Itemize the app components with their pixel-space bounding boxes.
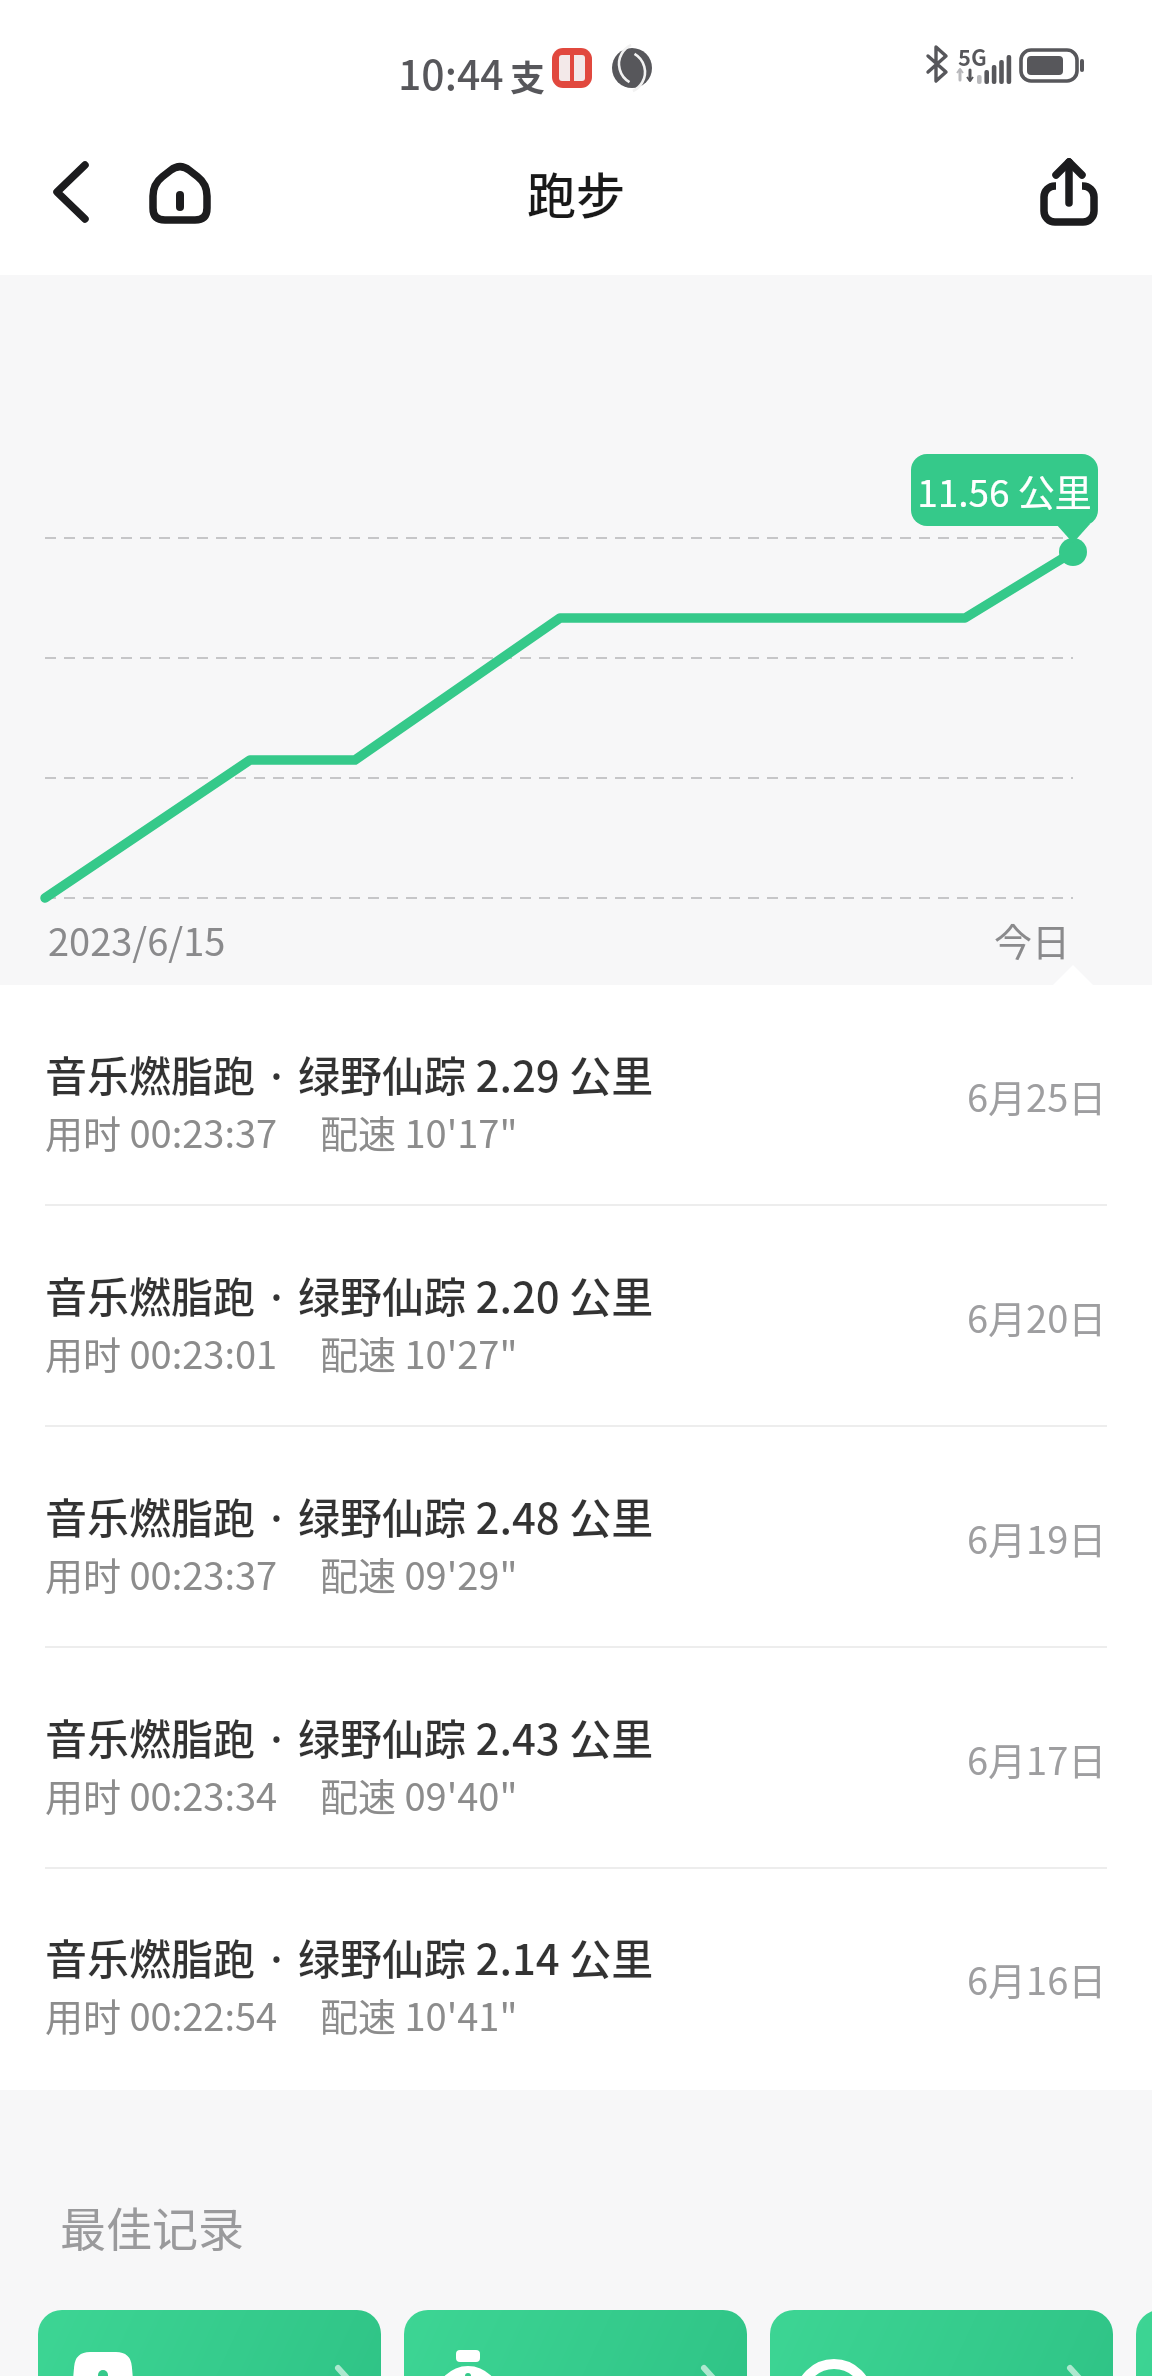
button[interactable] — [36, 162, 106, 232]
staticText: 用时 00:23:01 — [45, 1325, 278, 1380]
staticText: 6月17日 — [967, 1731, 1107, 1786]
button[interactable]: 音乐燃脂跑 · 绿野仙踪 2.29 公里 — [0, 985, 1152, 1206]
staticText: 跑步 — [527, 157, 626, 228]
staticText: 配速 10'27" — [320, 1325, 518, 1380]
staticText: 配速 10'17" — [320, 1104, 518, 1159]
staticText: 配速 09'40" — [320, 1767, 518, 1822]
button[interactable]: 音乐燃脂跑 · 绿野仙踪 2.43 公里 — [0, 1648, 1152, 1869]
button[interactable]: 音乐燃脂跑 · 绿野仙踪 2.20 公里 — [0, 1206, 1152, 1427]
staticText: 11.56 公里 — [911, 464, 1098, 518]
staticText: 用时 00:23:37 — [45, 1104, 278, 1159]
staticText: 音乐燃脂跑 · 绿野仙踪 2.20 公里 — [45, 1264, 654, 1325]
button[interactable]: 音乐燃脂跑 · 绿野仙踪 2.48 公里 — [0, 1427, 1152, 1648]
staticText: 6月19日 — [967, 1510, 1107, 1565]
staticText: 2023/6/15 — [48, 912, 226, 967]
staticText: 用时 00:23:37 — [45, 1546, 278, 1601]
staticText: 配速 09'29" — [320, 1546, 518, 1601]
staticText: 用时 00:23:34 — [45, 1767, 278, 1822]
staticText: 6月16日 — [967, 1951, 1107, 2006]
button[interactable] — [770, 2310, 1113, 2376]
staticText: 6月20日 — [967, 1289, 1107, 1344]
staticText: 5G — [958, 40, 987, 72]
staticText: 配速 10'41" — [320, 1987, 518, 2042]
button[interactable] — [1030, 148, 1110, 228]
staticText: 今日 — [994, 912, 1071, 967]
button[interactable]: 音乐燃脂跑 · 绿野仙踪 2.14 公里 — [0, 1869, 1152, 2088]
staticText: 音乐燃脂跑 · 绿野仙踪 2.48 公里 — [45, 1485, 654, 1546]
staticText: 音乐燃脂跑 · 绿野仙踪 2.43 公里 — [45, 1706, 654, 1767]
staticText: 用时 00:22:54 — [45, 1987, 278, 2042]
button[interactable] — [404, 2310, 747, 2376]
staticText: 音乐燃脂跑 · 绿野仙踪 2.29 公里 — [45, 1043, 654, 1104]
staticText: 音乐燃脂跑 · 绿野仙踪 2.14 公里 — [45, 1926, 654, 1987]
button[interactable] — [38, 2310, 381, 2376]
staticText: 最佳记录 — [60, 2193, 244, 2260]
staticText: 支 — [510, 50, 546, 101]
staticText: 10:44 — [398, 42, 504, 101]
staticText: 6月25日 — [967, 1068, 1107, 1123]
button[interactable] — [145, 158, 215, 228]
button[interactable] — [1136, 2310, 1152, 2376]
